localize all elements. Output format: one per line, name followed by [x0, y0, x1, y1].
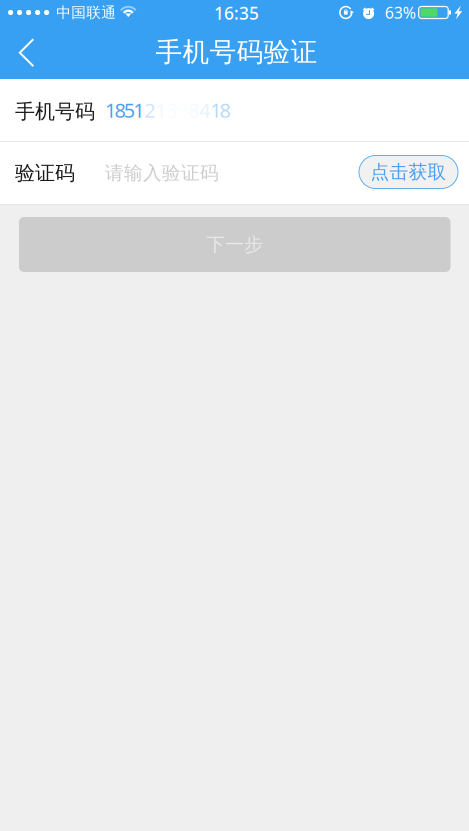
button[interactable]: 点击获取: [359, 156, 458, 189]
staticText: 中国联通: [56, 3, 116, 21]
staticText: 点击获取: [370, 160, 446, 183]
staticText: 8: [188, 97, 199, 123]
staticText: 63%: [385, 2, 416, 23]
button[interactable]: 手机号码: [0, 79, 469, 141]
button[interactable]: 验证码: [15, 142, 359, 204]
staticText: 下一步: [206, 233, 263, 256]
staticText: 验证码: [15, 161, 75, 185]
staticText: 1851: [105, 97, 144, 123]
staticText: 1: [155, 97, 166, 123]
button[interactable]: 返回: [0, 25, 50, 79]
staticText: 请输入验证码: [105, 161, 219, 184]
staticText: 16:35: [214, 1, 259, 24]
staticText: 手机号码验证: [155, 36, 317, 68]
staticText: 手机号码: [15, 99, 95, 124]
staticText: 2: [144, 97, 155, 123]
staticText: 18: [210, 97, 231, 123]
staticText: 4: [199, 97, 210, 123]
